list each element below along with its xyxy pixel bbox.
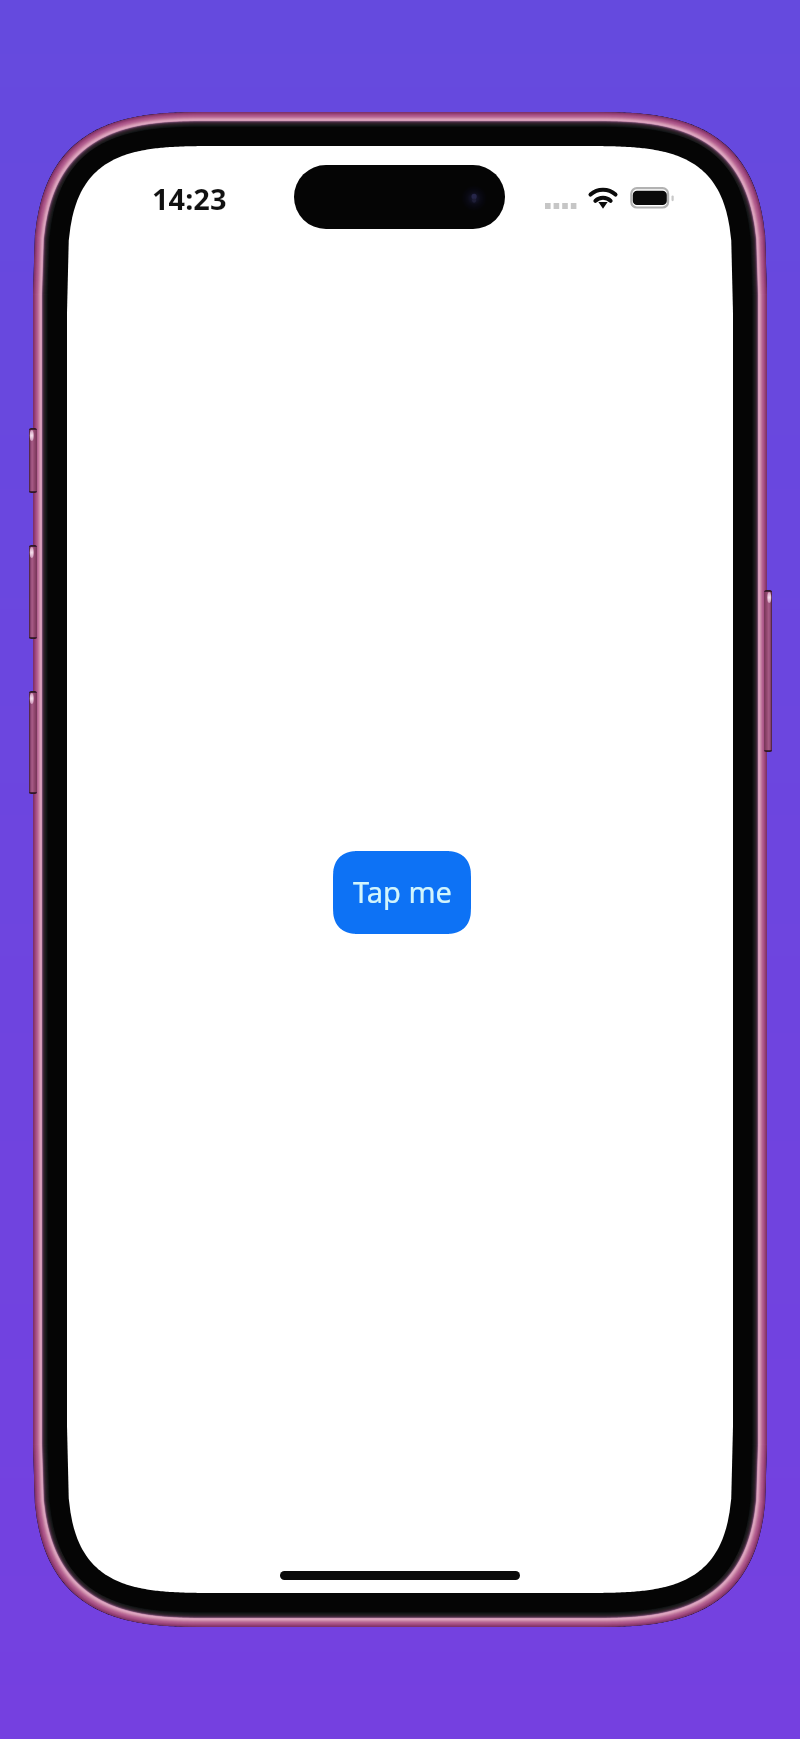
other: Battery [628, 185, 676, 211]
other: Wi-Fi [586, 182, 622, 212]
other: Cellular signal [543, 196, 581, 216]
button[interactable]: Tap me [333, 851, 471, 934]
staticText: Tap me [353, 872, 452, 911]
staticText: 14:23 [152, 179, 227, 218]
